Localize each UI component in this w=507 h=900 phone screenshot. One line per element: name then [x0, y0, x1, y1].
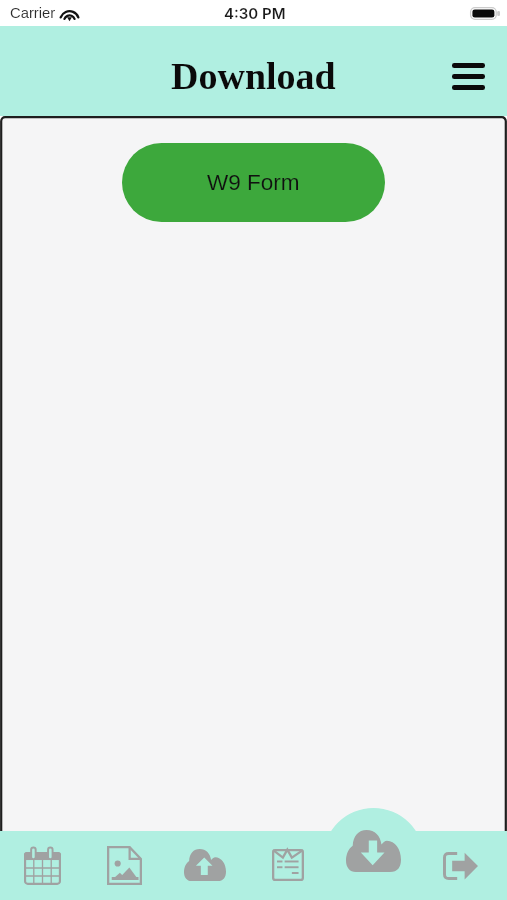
- button[interactable]: Log out: [432, 838, 488, 894]
- staticText: W9 Form: [207, 170, 300, 195]
- button[interactable]: Images: [96, 837, 152, 893]
- button[interactable]: Upload: [177, 837, 233, 893]
- button[interactable]: Menu: [444, 52, 492, 100]
- button[interactable]: Invoices: [260, 837, 316, 893]
- button[interactable]: Downloads: [340, 818, 406, 884]
- staticText: 4:30 PM: [224, 4, 286, 22]
- button[interactable]: Calendar: [14, 837, 70, 893]
- staticText: Carrier: [10, 5, 56, 22]
- staticText: Download: [171, 55, 336, 97]
- button[interactable]: W9 Form: [122, 143, 385, 222]
